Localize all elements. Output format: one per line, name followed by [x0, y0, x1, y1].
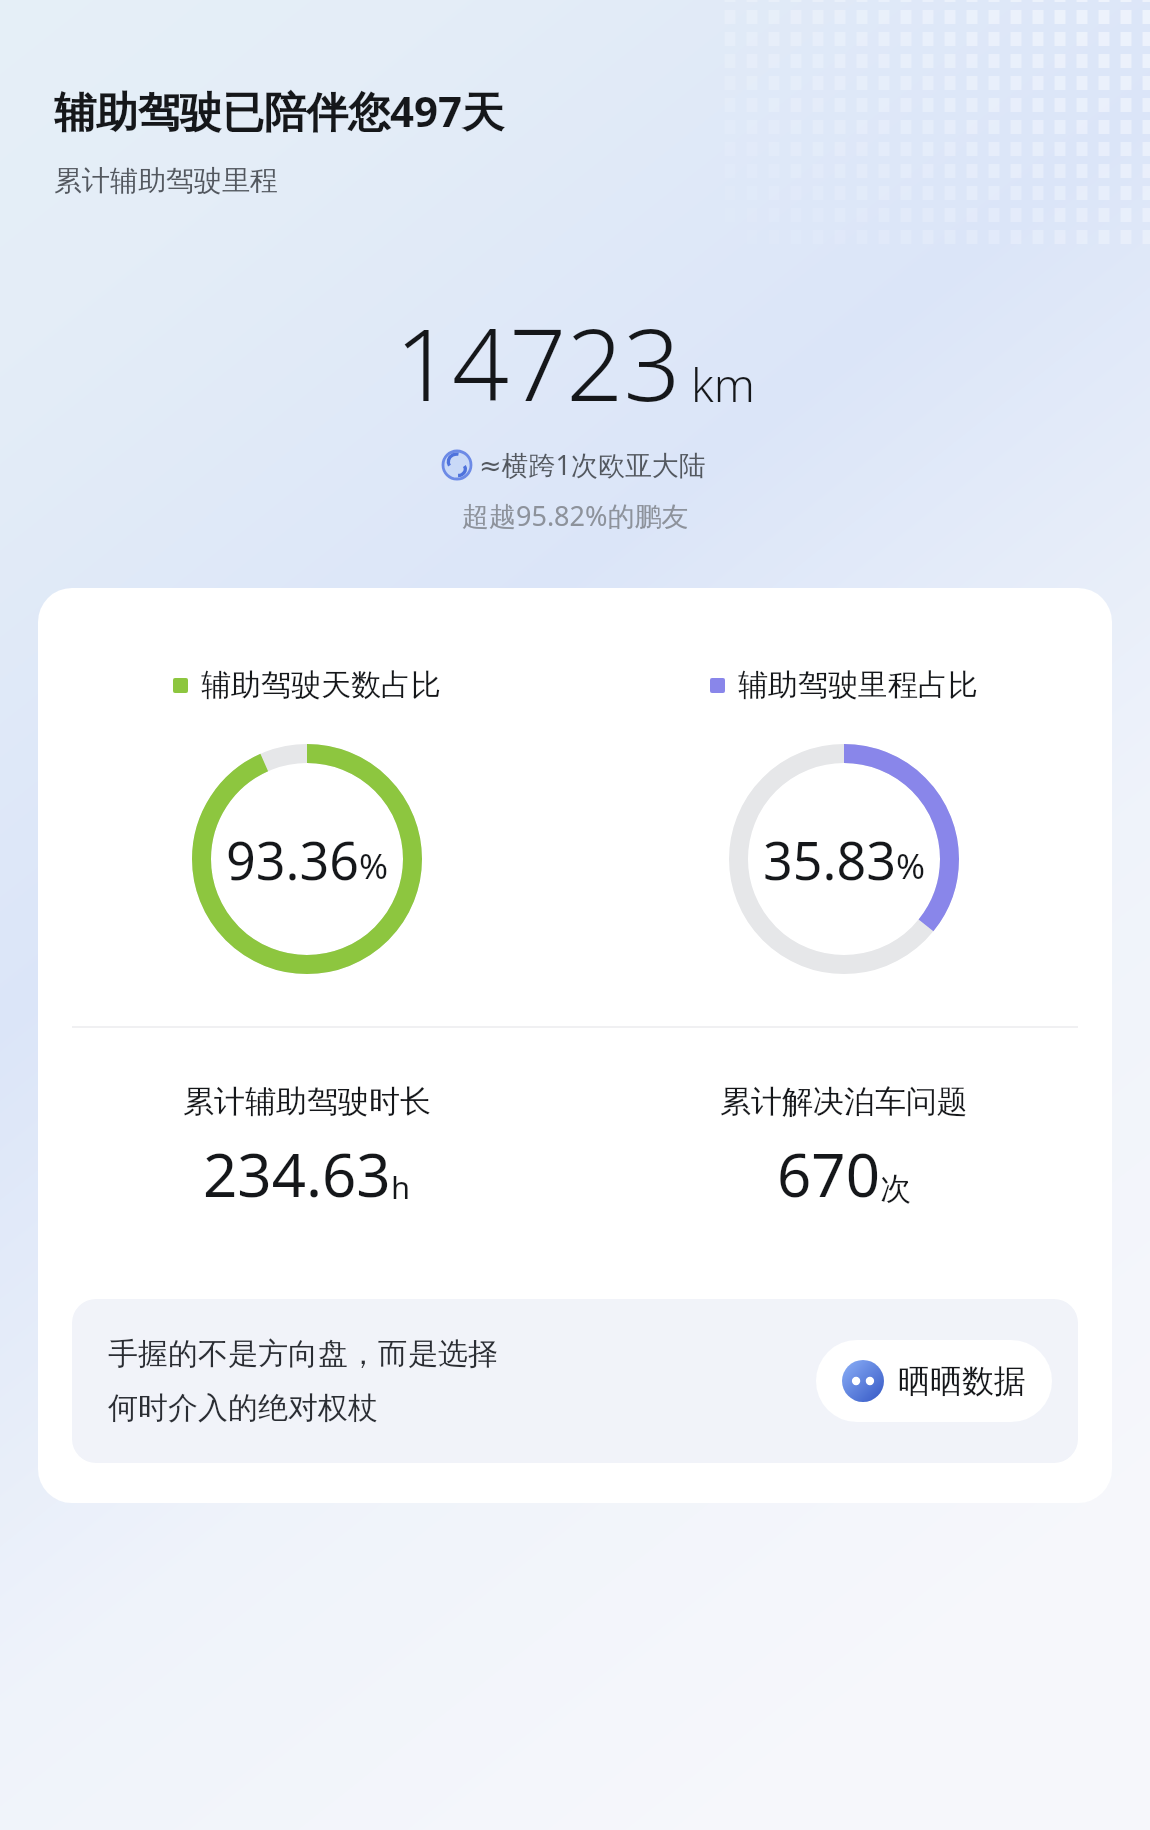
- staticText: %: [896, 842, 926, 890]
- staticText: 辅助驾驶已陪伴您497天: [54, 82, 505, 139]
- staticText: 35.83: [763, 824, 896, 895]
- staticText: 手握的不是方向盘，而是选择: [108, 1335, 498, 1373]
- other: Globe: [443, 451, 471, 479]
- staticText: 累计解决泊车问题: [720, 1082, 968, 1121]
- staticText: 累计辅助驾驶时长: [183, 1082, 431, 1121]
- staticText: 晒晒数据: [898, 1361, 1026, 1401]
- staticText: h: [391, 1166, 411, 1208]
- staticText: 次: [880, 1169, 911, 1208]
- staticText: 何时介入的绝对权杖: [108, 1389, 378, 1427]
- staticText: 93.36: [226, 824, 359, 895]
- staticText: %: [359, 842, 389, 890]
- staticText: km: [691, 353, 755, 416]
- staticText: 234.63: [203, 1133, 391, 1215]
- button[interactable]: 晒晒数据: [816, 1340, 1052, 1422]
- staticText: 累计辅助驾驶里程: [54, 163, 278, 198]
- staticText: 670: [777, 1133, 880, 1215]
- staticText: 辅助驾驶里程占比: [738, 666, 978, 704]
- staticText: 超越95.82%的鹏友: [462, 497, 689, 534]
- staticText: 14723: [395, 294, 681, 430]
- staticText: 辅助驾驶天数占比: [201, 666, 441, 704]
- staticText: ≈横跨1次欧亚大陆: [479, 446, 707, 483]
